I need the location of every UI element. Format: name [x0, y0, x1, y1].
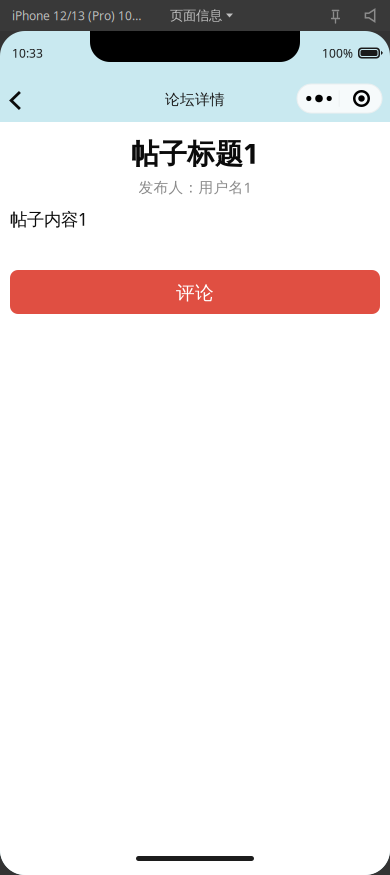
staticText: 发布人：用户名1 [138, 177, 251, 197]
staticText: 帖子内容1 [10, 207, 88, 230]
staticText: 100% [322, 45, 353, 61]
staticText: 帖子标题1 [131, 134, 259, 172]
button[interactable]: Back [0, 75, 29, 122]
staticText: 10:33 [12, 45, 43, 61]
button[interactable]: More options [297, 84, 382, 113]
staticText: iPhone 12/13 (Pro) 10… [12, 7, 141, 23]
staticText: 论坛详情 [165, 90, 225, 108]
button[interactable]: 评论 [10, 270, 380, 314]
button[interactable]: Sound [359, 0, 381, 31]
button[interactable]: 页面信息 [170, 0, 233, 31]
staticText: 页面信息 [170, 7, 222, 24]
staticText: 评论 [176, 281, 214, 304]
button[interactable]: Pin window [325, 0, 346, 31]
